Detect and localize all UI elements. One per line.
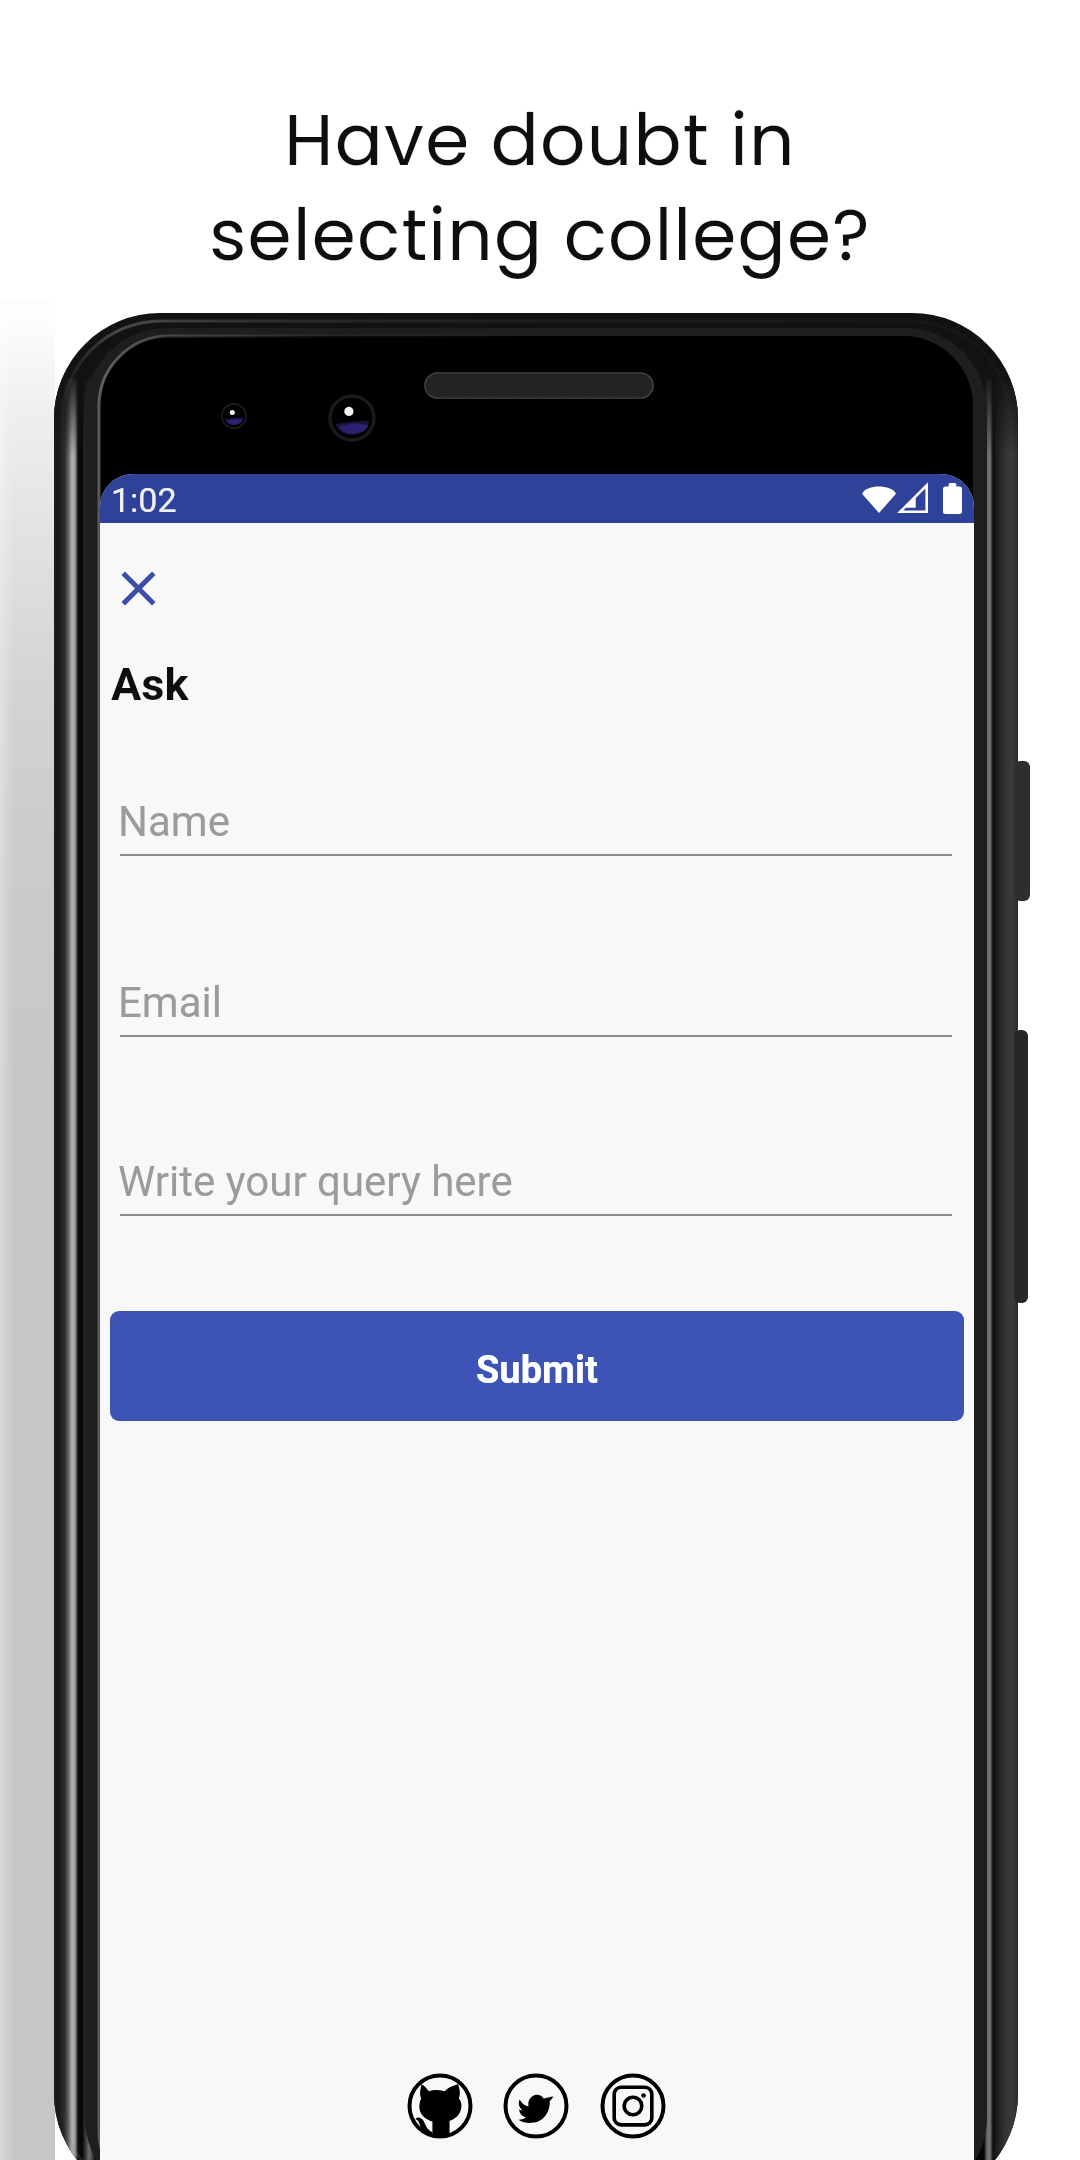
button[interactable]: Twitter [503,2073,569,2139]
staticText: Have doubt in selecting college? [0,90,1080,285]
staticText: Name [118,797,230,846]
staticText: Submit [476,1348,598,1393]
button[interactable]: Name [120,782,952,856]
staticText: Ask [111,658,189,711]
staticText: Write your query here [118,1157,513,1206]
button[interactable]: Close [110,560,167,617]
button[interactable]: Write your query here [120,1142,952,1216]
button[interactable]: Instagram [600,2073,666,2139]
button[interactable]: GitHub [407,2073,473,2139]
staticText: 1:02 [111,480,177,520]
button[interactable]: Submit [110,1311,964,1421]
staticText: Email [118,978,222,1027]
button[interactable]: Email [120,963,952,1037]
